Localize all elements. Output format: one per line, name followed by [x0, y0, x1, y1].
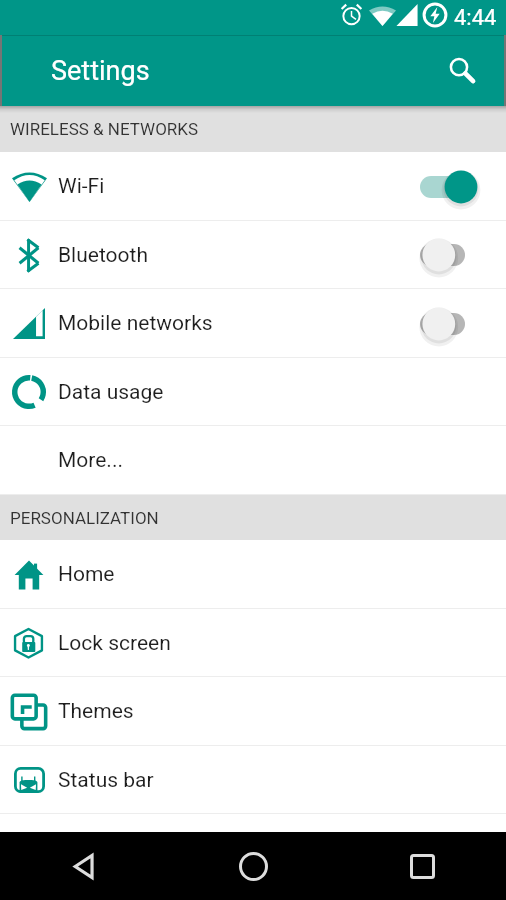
button[interactable]: Themes	[0, 677, 506, 746]
button[interactable]: Off	[418, 301, 480, 347]
button[interactable]: Mobile networks	[0, 289, 506, 358]
staticText: Lock screen	[58, 631, 171, 656]
staticText: Wi-Fi	[58, 174, 105, 199]
button[interactable]: Status bar	[0, 746, 506, 814]
button[interactable]: On	[418, 164, 480, 210]
staticText: 4:44	[454, 5, 497, 31]
button[interactable]: Home	[225, 838, 281, 894]
button[interactable]: More...	[0, 426, 506, 495]
button[interactable]: Data usage	[0, 358, 506, 426]
staticText: PERSONALIZATION	[10, 508, 159, 528]
staticText: Bluetooth	[58, 243, 148, 268]
staticText: Settings	[51, 55, 150, 87]
staticText: WIRELESS & NETWORKS	[10, 119, 199, 139]
button[interactable]: Wi-Fi	[0, 152, 506, 221]
button[interactable]: Recents	[394, 838, 450, 894]
staticText: Themes	[58, 699, 134, 724]
button[interactable]: Back	[56, 838, 112, 894]
button[interactable]: Search	[438, 47, 486, 95]
button[interactable]: Bluetooth	[0, 221, 506, 289]
staticText: More...	[58, 448, 123, 473]
staticText: Status bar	[58, 768, 154, 793]
staticText: Data usage	[58, 380, 164, 405]
button[interactable]: Home	[0, 540, 506, 609]
button[interactable]: Lock screen	[0, 609, 506, 677]
staticText: Mobile networks	[58, 311, 213, 336]
staticText: Home	[58, 562, 115, 587]
button[interactable]: Off	[418, 232, 480, 278]
